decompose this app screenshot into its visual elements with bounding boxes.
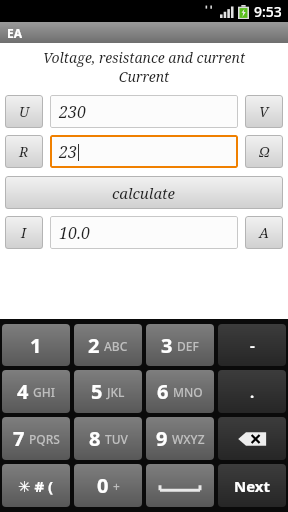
staticText: + [113, 478, 120, 494]
staticText: 8 [89, 425, 101, 452]
button[interactable]: ✳ # ( [2, 464, 70, 507]
staticText: TUV [105, 431, 128, 447]
staticText: - [250, 335, 255, 355]
staticText: GHI [33, 384, 55, 400]
staticText: U [19, 102, 30, 121]
button[interactable]: 5 [74, 370, 142, 413]
button[interactable]: Period [218, 370, 286, 413]
button[interactable]: R [5, 135, 43, 168]
staticText: V [259, 102, 269, 121]
staticText: 23 [59, 141, 77, 163]
staticText: ✳ # ( [18, 476, 54, 496]
staticText: 10.0 [59, 222, 90, 244]
button[interactable]: 6 [146, 370, 214, 413]
staticText: . [250, 382, 255, 402]
staticText: 2 [88, 332, 100, 359]
staticText: PQRS [29, 431, 60, 447]
button[interactable]: 230 [50, 95, 238, 128]
button[interactable]: Backspace [218, 417, 286, 460]
staticText: 0 [97, 472, 109, 499]
staticText: MNO [173, 384, 203, 400]
button[interactable]: U [5, 95, 43, 128]
staticText: DEF [177, 338, 199, 354]
button[interactable]: Next [218, 464, 286, 507]
button[interactable]: 3 [146, 324, 214, 366]
staticText: 9 [156, 425, 168, 452]
staticText: 4 [17, 378, 29, 405]
button[interactable]: 10.0 [50, 216, 238, 249]
button[interactable]: calculate [5, 176, 283, 209]
staticText: A [259, 223, 269, 242]
staticText: 3 [161, 332, 173, 359]
button[interactable]: Space [146, 464, 214, 507]
staticText: 6 [157, 378, 169, 405]
button[interactable]: 0 [74, 464, 142, 507]
staticText: calculate [112, 183, 176, 203]
button[interactable]: 23 [50, 135, 238, 168]
staticText: 5 [91, 378, 103, 405]
button[interactable]: 9 [146, 417, 214, 460]
button[interactable]: Ω [245, 135, 283, 168]
staticText: 9:53 [254, 2, 282, 21]
staticText: Voltage, resistance and current [0, 48, 288, 67]
staticText: Ω [259, 142, 270, 161]
button[interactable]: 7 [2, 417, 70, 460]
staticText: 1 [30, 332, 42, 359]
staticText: Current [0, 67, 288, 86]
staticText: 230 [59, 101, 86, 123]
button[interactable]: 8 [74, 417, 142, 460]
button[interactable]: A [245, 216, 283, 249]
staticText: JKL [107, 384, 125, 400]
button[interactable]: 2 [74, 324, 142, 366]
staticText: Next [234, 476, 271, 496]
staticText: EA [7, 25, 23, 41]
staticText: I [21, 223, 27, 242]
button[interactable]: V [245, 95, 283, 128]
button[interactable]: I [5, 216, 43, 249]
button[interactable]: 4 [2, 370, 70, 413]
staticText: R [19, 142, 29, 161]
button[interactable]: 1 [2, 324, 70, 366]
staticText: 7 [13, 425, 25, 452]
staticText: ABC [104, 338, 128, 354]
button[interactable]: Minus [218, 324, 286, 366]
staticText: WXYZ [172, 431, 205, 447]
